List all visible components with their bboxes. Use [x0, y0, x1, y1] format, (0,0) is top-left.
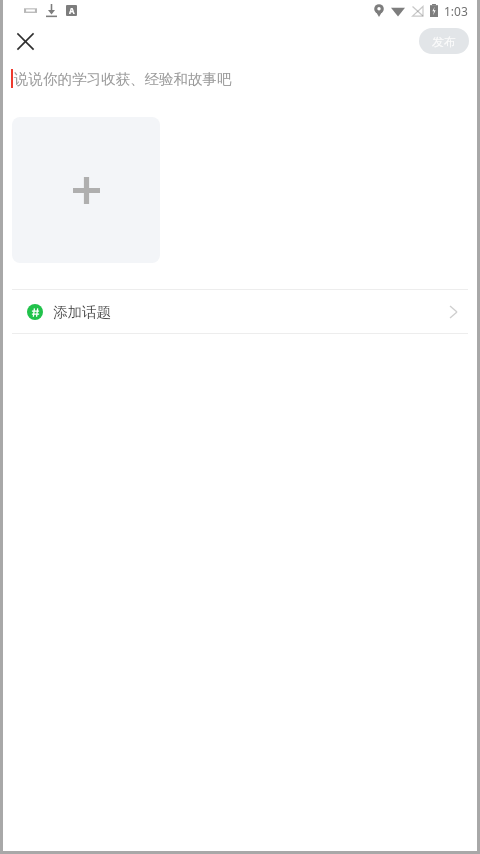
button[interactable]: 添加话题	[3, 290, 477, 333]
button[interactable]: Close	[9, 25, 41, 57]
staticText: 发布	[432, 34, 456, 49]
staticText: 1:03	[444, 3, 468, 19]
staticText: 添加话题	[53, 303, 111, 321]
button[interactable]: 发布	[419, 28, 469, 54]
staticText: 说说你的学习收获、经验和故事吧	[14, 70, 232, 88]
button[interactable]: Add photo	[12, 117, 160, 263]
button[interactable]: 说说你的学习收获、经验和故事吧	[3, 61, 477, 95]
staticText: A	[69, 5, 75, 16]
